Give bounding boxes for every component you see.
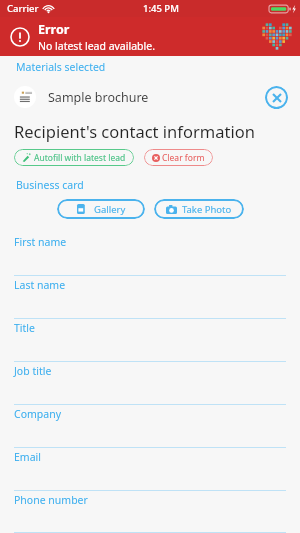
- staticText: No latest lead available.: [38, 39, 155, 53]
- staticText: 1:45 PM: [143, 2, 179, 15]
- staticText: Carrier: [7, 2, 39, 15]
- button[interactable]: Take Photo: [154, 199, 244, 219]
- button[interactable]: Job title: [0, 362, 300, 405]
- staticText: Title: [14, 321, 35, 335]
- button[interactable]: Autofill with latest lead: [14, 149, 134, 166]
- staticText: Clear form: [162, 152, 205, 164]
- staticText: Take Photo: [182, 203, 232, 216]
- button[interactable]: Gallery: [57, 199, 145, 219]
- staticText: Email: [14, 450, 41, 464]
- button[interactable]: Company: [0, 405, 300, 448]
- button[interactable]: Clear form: [144, 149, 213, 166]
- staticText: Sample brochure: [48, 89, 149, 106]
- other: Logo: [262, 23, 292, 50]
- staticText: Materials selected: [16, 60, 106, 74]
- button[interactable]: Remove material: [265, 86, 288, 109]
- staticText: Company: [14, 407, 61, 421]
- button[interactable]: Last name: [0, 276, 300, 319]
- button[interactable]: First name: [0, 233, 300, 276]
- staticText: Recipient's contact information: [14, 120, 255, 142]
- staticText: Autofill with latest lead: [34, 152, 126, 164]
- staticText: First name: [14, 235, 67, 249]
- staticText: Gallery: [94, 203, 126, 216]
- staticText: Phone number: [14, 493, 88, 507]
- staticText: Error: [38, 21, 70, 38]
- button[interactable]: Phone number: [0, 491, 300, 533]
- staticText: Business card: [16, 178, 84, 192]
- staticText: Last name: [14, 278, 66, 292]
- button[interactable]: Title: [0, 319, 300, 362]
- staticText: Job title: [14, 364, 52, 378]
- button[interactable]: Email: [0, 448, 300, 491]
